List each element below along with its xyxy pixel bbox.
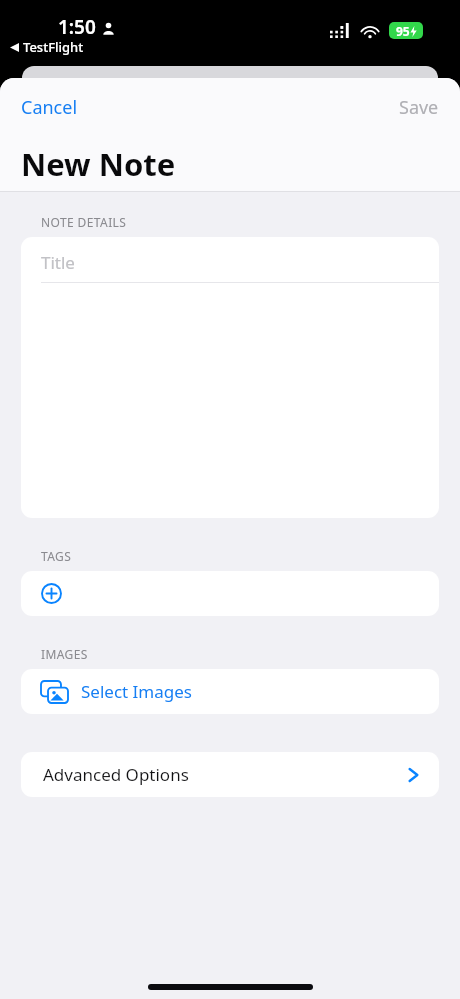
staticText: TestFlight (23, 38, 84, 56)
staticText: New Note (21, 143, 176, 185)
staticText: Title (41, 251, 75, 274)
staticText: IMAGES (41, 646, 88, 662)
staticText: Cancel (21, 95, 78, 120)
staticText: Advanced Options (43, 763, 189, 786)
button[interactable]: Cancel (10, 89, 89, 126)
staticText: Select Images (81, 680, 192, 703)
button[interactable]: Save (388, 89, 450, 126)
staticText: NOTE DETAILS (41, 214, 127, 230)
button[interactable]: Advanced Options (21, 752, 439, 797)
staticText: TAGS (41, 548, 72, 564)
staticText: Save (399, 95, 439, 120)
button[interactable]: Select Images (21, 669, 439, 714)
staticText: 1:50 (58, 14, 96, 40)
button[interactable]: Add tag (21, 571, 439, 616)
staticText: 95 (396, 23, 410, 39)
